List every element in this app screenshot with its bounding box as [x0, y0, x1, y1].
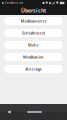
staticText: Übersicht: [21, 7, 46, 14]
staticText: Vodafone.de: [5, 1, 24, 5]
staticText: Mehr: [28, 42, 39, 48]
button[interactable]: Medikation: [4, 52, 63, 61]
button[interactable]: Recent apps: [53, 104, 65, 120]
staticText: Medikation: [23, 54, 44, 60]
staticText: Anträge: [25, 66, 41, 72]
staticText: Schlafmittel: [22, 30, 45, 36]
button[interactable]: Schlafmittel: [4, 28, 63, 37]
staticText: Medikamente: [20, 18, 46, 24]
button[interactable]: Mehr: [4, 40, 63, 49]
button[interactable]: Home: [23, 104, 45, 120]
button[interactable]: Anträge: [4, 64, 63, 73]
button[interactable]: Medikamente: [4, 16, 63, 25]
button[interactable]: Back: [2, 104, 16, 120]
